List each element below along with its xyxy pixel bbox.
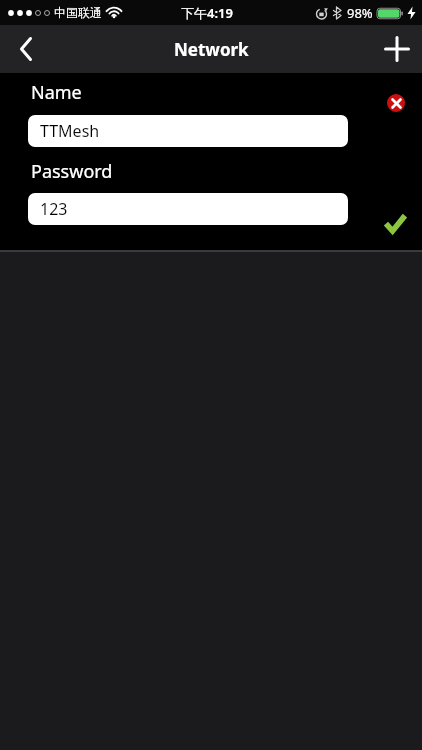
button[interactable] xyxy=(387,94,405,112)
staticText: Network xyxy=(174,38,249,61)
staticText: 中国联通 xyxy=(54,5,102,20)
button[interactable]: TTMesh xyxy=(28,115,348,147)
staticText: Name xyxy=(31,80,82,105)
staticText: 98% xyxy=(347,4,373,22)
staticText: Password xyxy=(31,159,113,184)
button[interactable] xyxy=(372,25,422,73)
button[interactable] xyxy=(0,25,48,73)
button[interactable] xyxy=(384,214,407,235)
staticText: 123 xyxy=(40,198,68,220)
staticText: TTMesh xyxy=(40,120,100,142)
staticText: 下午4:19 xyxy=(181,4,233,22)
button[interactable]: 123 xyxy=(28,193,348,225)
